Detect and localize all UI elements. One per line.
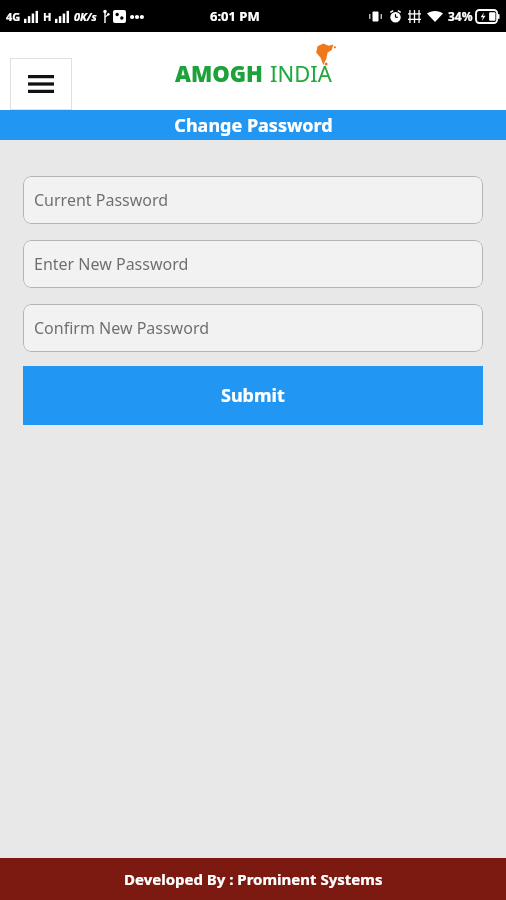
staticText: Enter New Password: [34, 253, 189, 275]
staticText: Confirm New Password: [34, 317, 210, 339]
staticText: H: [43, 9, 52, 24]
staticText: Change Password: [174, 113, 333, 138]
staticText: Current Password: [34, 189, 169, 211]
button[interactable]: Submit: [23, 366, 483, 425]
button[interactable]: Open navigation menu: [10, 58, 72, 110]
staticText: 6:01 PM: [210, 7, 260, 25]
button[interactable]: Enter New Password: [23, 240, 483, 288]
staticText: AMOGH: [175, 58, 263, 88]
staticText: INDIA: [270, 58, 332, 88]
button[interactable]: Confirm New Password: [23, 304, 483, 352]
staticText: 4G: [6, 9, 21, 24]
button[interactable]: Current Password: [23, 176, 483, 224]
staticText: 0K/s: [74, 9, 97, 24]
staticText: 34%: [448, 8, 473, 24]
staticText: Submit: [221, 383, 285, 408]
staticText: Developed By : Prominent Systems: [124, 869, 383, 889]
